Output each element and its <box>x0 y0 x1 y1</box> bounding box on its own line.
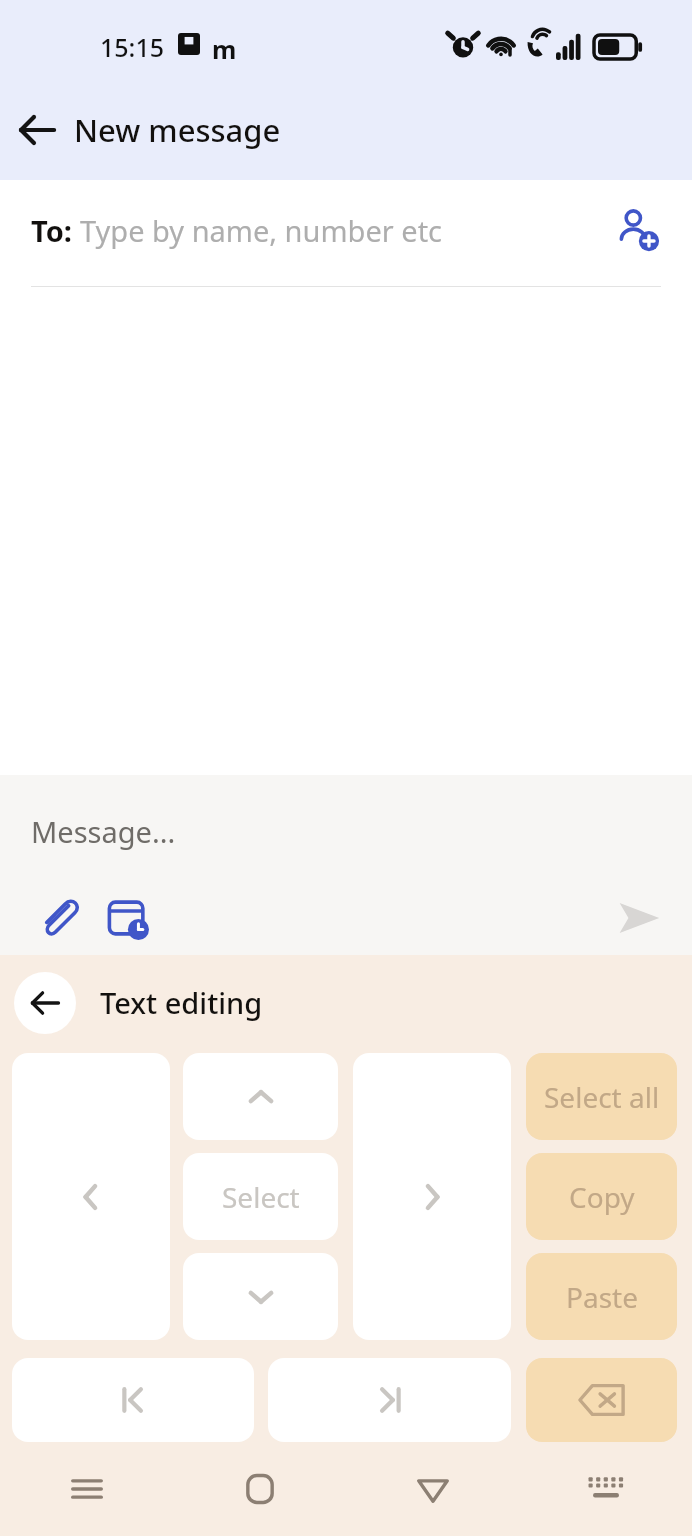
button[interactable]: Copy <box>526 1153 677 1240</box>
staticText: Paste <box>566 1278 638 1316</box>
button[interactable]: Back <box>0 93 74 167</box>
button[interactable]: Type by name, number etc <box>80 211 602 250</box>
button[interactable]: Home <box>173 1442 346 1536</box>
button[interactable]: Select <box>183 1153 338 1240</box>
button[interactable]: Move left <box>12 1053 170 1340</box>
button[interactable]: Back <box>14 972 76 1034</box>
staticText: Text editing <box>100 983 263 1022</box>
button[interactable]: Recents <box>0 1442 173 1536</box>
staticText: Copy <box>569 1178 635 1216</box>
button[interactable]: Paste <box>526 1253 677 1340</box>
button[interactable]: Move right <box>353 1053 511 1340</box>
staticText: 15:15 <box>100 30 165 64</box>
button[interactable]: Delete <box>526 1358 677 1442</box>
staticText: To: <box>31 211 80 250</box>
staticText: Select <box>222 1178 300 1216</box>
button[interactable]: Schedule message <box>98 889 156 947</box>
staticText: Message... <box>31 812 176 851</box>
staticText: Select all <box>544 1078 660 1116</box>
button[interactable]: Add contact <box>602 195 672 265</box>
button[interactable]: Move up <box>183 1053 338 1140</box>
button[interactable]: Hide keyboard <box>519 1442 692 1536</box>
button[interactable]: Move down <box>183 1253 338 1340</box>
button[interactable]: Move to start <box>12 1358 254 1442</box>
staticText: Type by name, number etc <box>80 211 443 250</box>
button[interactable]: Send <box>604 883 674 953</box>
button[interactable]: Select all <box>526 1053 677 1140</box>
staticText: New message <box>74 109 281 151</box>
button[interactable]: Move to end <box>268 1358 511 1442</box>
staticText: m <box>212 32 237 66</box>
button[interactable]: Back <box>346 1442 519 1536</box>
button[interactable]: Attach file <box>30 889 88 947</box>
